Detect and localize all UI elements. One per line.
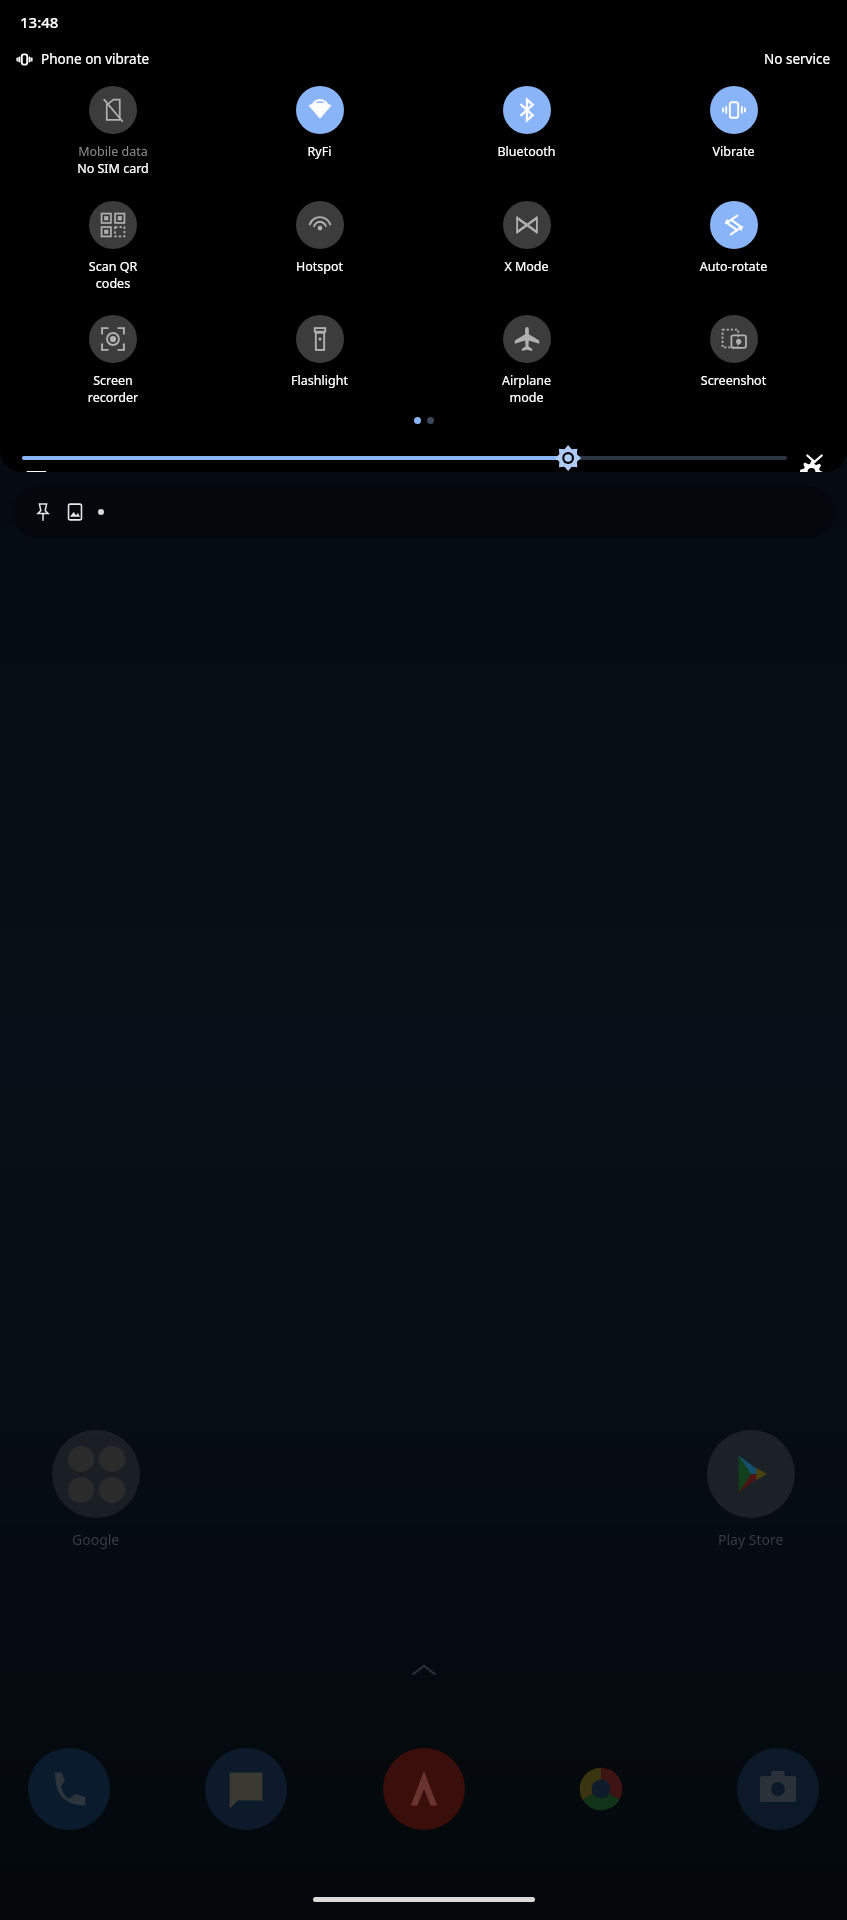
button[interactable]: Play Store xyxy=(707,1430,795,1549)
staticText: X Mode xyxy=(423,258,630,275)
button[interactable]: RyFi xyxy=(216,86,423,160)
button[interactable]: App xyxy=(205,1748,287,1830)
button[interactable]: Hotspot xyxy=(216,201,423,275)
button[interactable]: Flashlight xyxy=(216,315,423,389)
staticText: Flashlight xyxy=(216,372,423,389)
staticText: Mobile data xyxy=(10,143,216,160)
button[interactable]: Expand brightness options xyxy=(797,444,831,472)
button[interactable]: X Mode xyxy=(423,201,630,275)
button[interactable]: Vibrate xyxy=(630,86,837,160)
button[interactable]: Google xyxy=(52,1430,140,1549)
staticText: No service xyxy=(764,50,831,68)
staticText: Hotspot xyxy=(216,258,423,275)
staticText: RyFi xyxy=(216,143,423,160)
button[interactable]: App xyxy=(737,1748,819,1830)
button[interactable]: Airplane mode xyxy=(423,315,630,405)
button[interactable]: Screen recorder xyxy=(10,315,216,405)
staticText: No SIM card xyxy=(10,160,216,177)
staticText: Google xyxy=(72,1530,120,1549)
button[interactable] xyxy=(12,486,835,538)
button[interactable]: App xyxy=(383,1748,465,1830)
button[interactable]: App xyxy=(28,1748,110,1830)
button[interactable]: App xyxy=(560,1748,642,1830)
button[interactable]: Scan QR codes xyxy=(10,201,216,291)
staticText: Airplane mode xyxy=(423,372,630,405)
staticText: Vibrate xyxy=(630,143,837,160)
staticText: Scan QR codes xyxy=(10,258,216,291)
staticText: Play Store xyxy=(718,1530,784,1549)
staticText: Bluetooth xyxy=(423,143,630,160)
staticText: Auto-rotate xyxy=(630,258,837,275)
button[interactable] xyxy=(24,444,785,472)
staticText: Screenshot xyxy=(630,372,837,389)
staticText: 13:48 xyxy=(20,12,59,32)
button[interactable]: Mobile data xyxy=(10,86,216,177)
staticText: Phone on vibrate xyxy=(41,50,150,68)
staticText: Screen recorder xyxy=(10,372,216,405)
button[interactable]: Bluetooth xyxy=(423,86,630,160)
button[interactable]: Auto-rotate xyxy=(630,201,837,275)
button[interactable]: Screenshot xyxy=(630,315,837,389)
